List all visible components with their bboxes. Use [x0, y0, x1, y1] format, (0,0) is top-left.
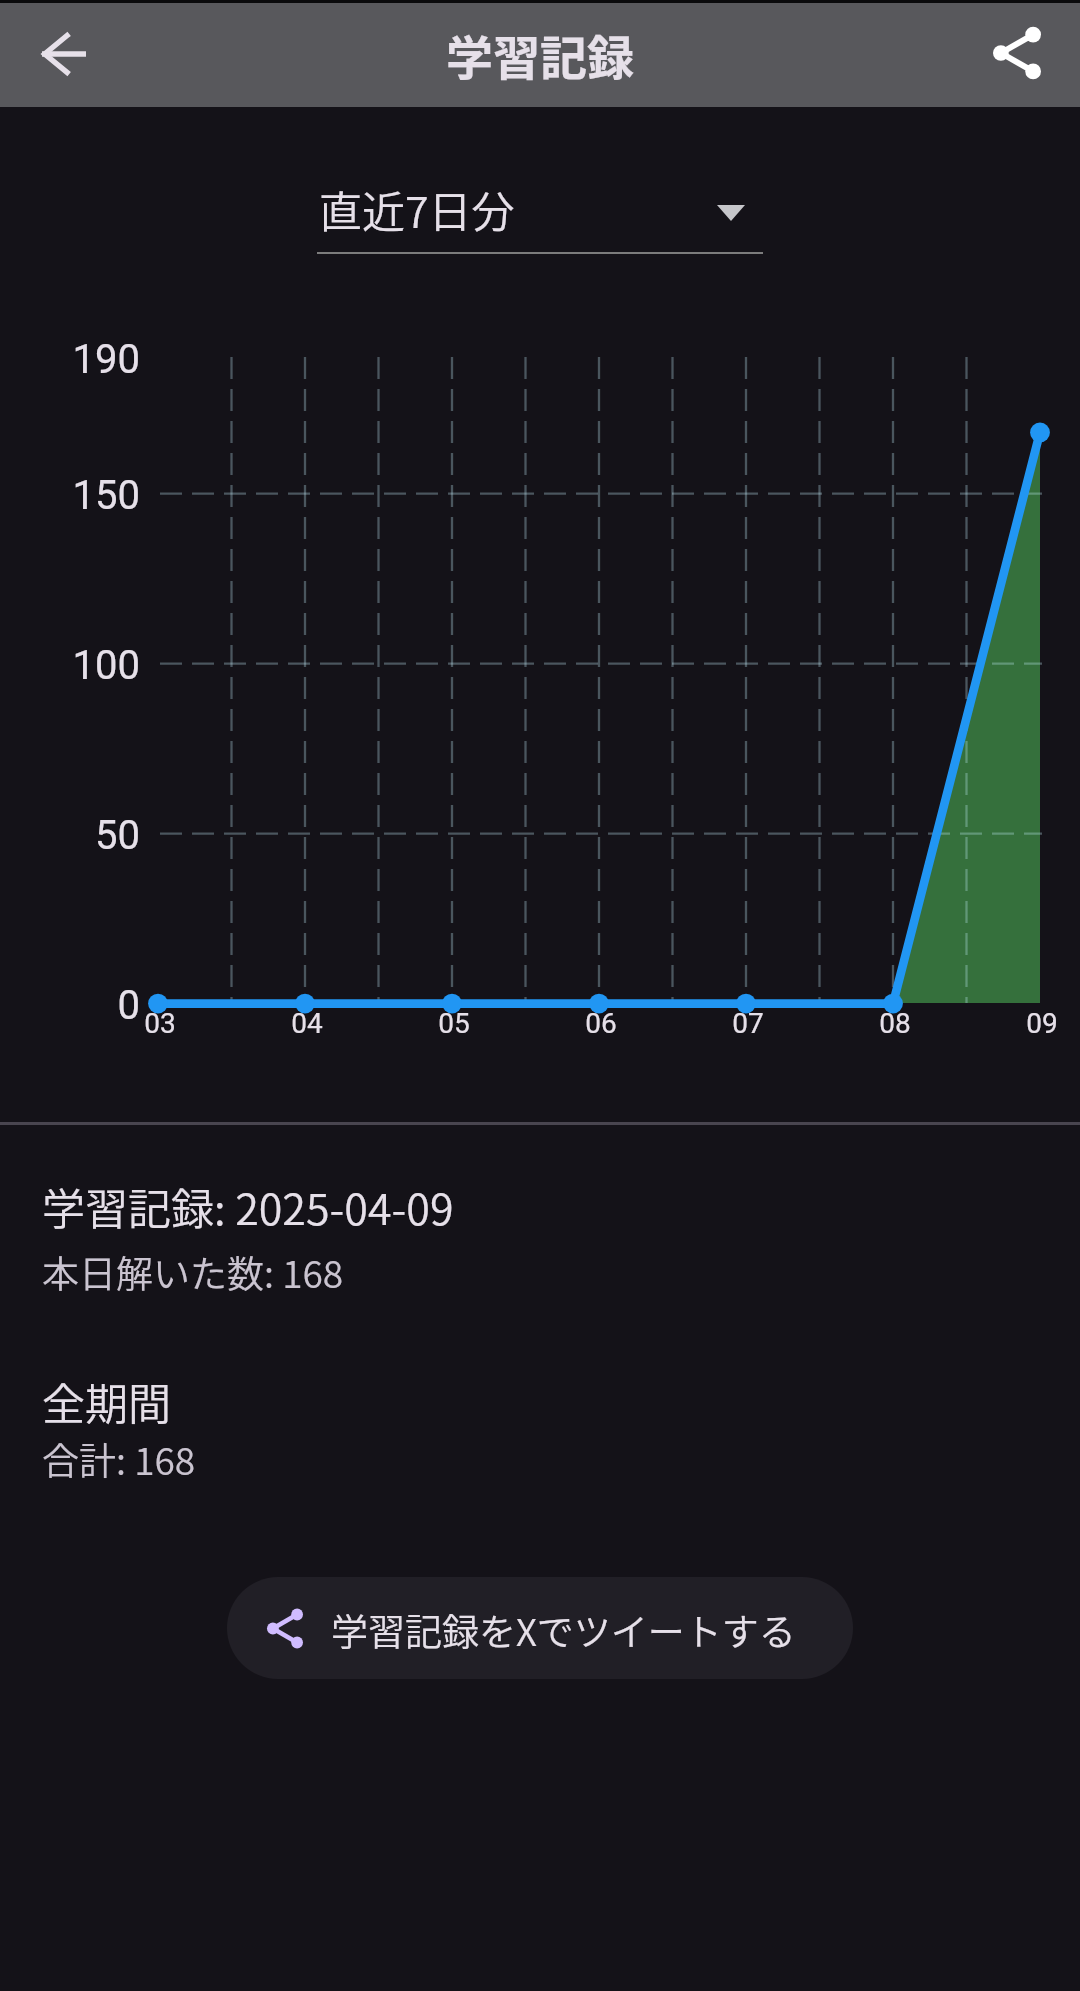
button[interactable]: Share — [977, 13, 1057, 93]
staticText: 直近7日分 — [319, 178, 515, 240]
button[interactable]: Back — [12, 12, 92, 92]
staticText: 05 — [404, 1007, 504, 1040]
staticText: 150 — [0, 472, 140, 519]
staticText: 0 — [0, 982, 140, 1029]
button[interactable]: 学習記録をXでツイートする — [227, 1577, 853, 1679]
staticText: 07 — [698, 1007, 798, 1040]
staticText: 合計: 168 — [42, 1432, 196, 1486]
staticText: 本日解いた数: 168 — [42, 1245, 344, 1299]
staticText: 学習記録: 2025-04-09 — [42, 1175, 454, 1237]
staticText: 09 — [992, 1007, 1080, 1040]
staticText: 学習記録をXでツイートする — [331, 1603, 796, 1657]
staticText: 08 — [845, 1007, 945, 1040]
staticText: 04 — [257, 1007, 357, 1040]
button[interactable]: 直近7日分 — [317, 178, 763, 258]
staticText: 100 — [0, 642, 140, 689]
staticText: 全期間 — [42, 1370, 171, 1432]
staticText: 190 — [0, 336, 140, 383]
staticText: 03 — [110, 1007, 210, 1040]
staticText: 学習記録 — [446, 20, 634, 88]
staticText: 50 — [0, 812, 140, 859]
staticText: 06 — [551, 1007, 651, 1040]
